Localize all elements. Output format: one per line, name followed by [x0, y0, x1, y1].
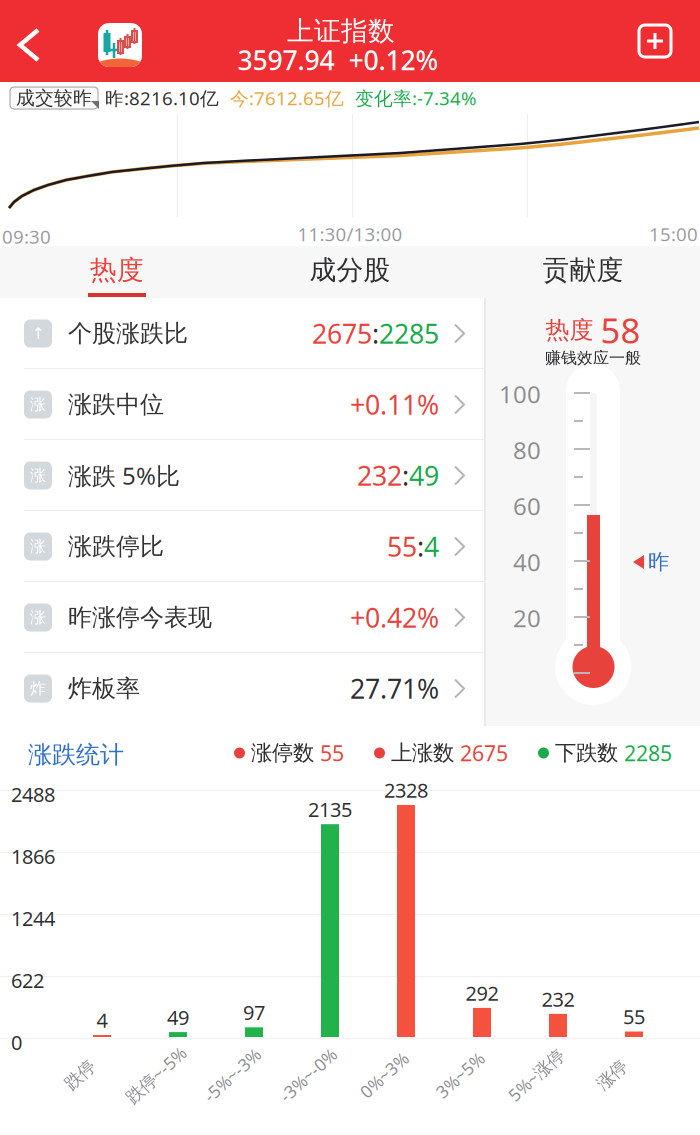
staticText: 40	[513, 546, 541, 578]
staticText: -3%~-0%	[273, 1063, 343, 1086]
staticText: 2285	[379, 316, 439, 351]
button[interactable]: 成分股	[233, 246, 466, 298]
staticText: ↑	[31, 324, 44, 343]
staticText: 2285	[624, 739, 672, 767]
staticText: 55	[387, 529, 417, 564]
button[interactable]: Add	[626, 12, 684, 70]
staticText: 2675	[460, 739, 508, 767]
staticText: 4	[424, 529, 439, 564]
staticText: :	[372, 316, 379, 351]
staticText: 昨	[648, 549, 669, 575]
staticText: 58	[600, 307, 640, 353]
staticText: 赚钱效应一般	[545, 348, 641, 368]
button[interactable]: 贡献度	[466, 246, 699, 298]
button[interactable]: ↑	[0, 298, 484, 369]
staticText: 1244	[11, 905, 55, 932]
staticText: 个股涨跌比	[68, 319, 188, 348]
staticText: -5%~-3%	[197, 1063, 267, 1086]
staticText: 09:30	[2, 224, 51, 249]
staticText: 3597.94 +0.12%	[237, 42, 438, 78]
staticText: 60	[513, 490, 541, 522]
staticText: 0%~3%	[355, 1063, 413, 1086]
staticText: +0.11%	[350, 387, 439, 422]
staticText: 80	[513, 434, 541, 466]
staticText: 昨:8216.10亿	[105, 86, 219, 110]
staticText: 27.71%	[350, 671, 439, 706]
button[interactable]: 涨	[0, 440, 484, 511]
staticText: 100	[499, 378, 541, 410]
staticText: 55	[320, 739, 344, 767]
staticText: 2328	[384, 777, 428, 803]
staticText: 成分股	[309, 254, 390, 286]
staticText: 49	[167, 1004, 189, 1030]
staticText: 上证指数	[287, 15, 395, 47]
button[interactable]: 涨	[0, 582, 484, 653]
staticText: 2675	[312, 316, 372, 351]
staticText: :	[402, 458, 409, 493]
staticText: 变化率:-7.34%	[355, 86, 477, 110]
staticText: 20	[513, 602, 541, 634]
staticText: 涨跌 5%比	[68, 460, 180, 491]
staticText: 涨跌统计	[28, 740, 124, 769]
staticText: 15:00	[649, 222, 698, 246]
staticText: 2135	[308, 796, 352, 822]
button[interactable]: Back	[0, 16, 74, 74]
staticText: 涨跌停比	[68, 532, 164, 561]
button[interactable]: 成交较昨	[10, 87, 106, 111]
staticText: 涨停	[595, 1064, 629, 1086]
staticText: 232	[357, 458, 402, 493]
staticText: 炸板率	[68, 674, 140, 703]
staticText: :	[417, 529, 424, 564]
staticText: 232	[541, 986, 574, 1012]
staticText: 97	[243, 999, 265, 1026]
button[interactable]: 热度	[0, 246, 233, 298]
staticText: 涨	[30, 608, 46, 627]
staticText: 5%~涨停	[502, 1063, 570, 1086]
staticText: 成交较昨	[16, 86, 92, 109]
button[interactable]: 涨	[0, 511, 484, 582]
staticText: 0	[11, 1029, 22, 1056]
button[interactable]: 涨	[0, 369, 484, 440]
staticText: 贡献度	[542, 254, 623, 286]
staticText: 涨	[30, 395, 46, 414]
staticText: 上涨数	[391, 740, 454, 766]
staticText: 涨跌中位	[68, 390, 164, 419]
staticText: 292	[465, 980, 498, 1006]
staticText: 涨停数	[251, 740, 314, 766]
staticText: 今:7612.65亿	[230, 86, 344, 110]
staticText: 49	[409, 458, 439, 493]
staticText: 涨	[30, 537, 46, 556]
staticText: 跌停~-5%	[119, 1063, 193, 1086]
staticText: 55	[623, 1003, 645, 1030]
staticText: 1866	[11, 843, 55, 870]
staticText: 4	[96, 1007, 107, 1033]
staticText: 炸	[30, 679, 46, 698]
button[interactable]: 炸	[0, 653, 484, 724]
staticText: 涨	[30, 466, 46, 485]
staticText: 跌停	[63, 1064, 97, 1086]
staticText: 2488	[11, 781, 55, 808]
staticText: 622	[11, 967, 44, 994]
staticText: 热度	[90, 254, 144, 286]
staticText: 3%~5%	[431, 1063, 489, 1086]
staticText: 11:30/13:00	[297, 222, 402, 246]
staticText: 下跌数	[555, 740, 618, 766]
staticText: +0.42%	[350, 600, 439, 635]
staticText: 热度	[545, 315, 593, 345]
staticText: 昨涨停今表现	[68, 603, 212, 632]
